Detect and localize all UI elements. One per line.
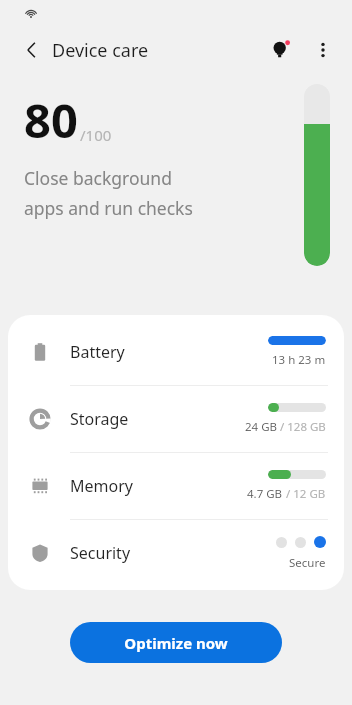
staticText: apps and run checks (24, 196, 193, 220)
staticText: Secure (289, 555, 326, 571)
staticText: Close background (24, 166, 172, 190)
staticText: 4.7 GB (247, 486, 283, 502)
button[interactable]: Storage (8, 386, 344, 452)
staticText: Device care (52, 38, 149, 63)
button[interactable]: Optimize now (70, 622, 282, 663)
staticText: 13 h 23 m (272, 352, 326, 368)
staticText: / 128 GB (277, 419, 326, 435)
staticText: Security (70, 542, 131, 564)
staticText: /100 (80, 125, 112, 145)
staticText: / 12 GB (283, 486, 326, 502)
staticText: Battery (70, 341, 125, 363)
staticText: Optimize now (124, 633, 228, 653)
staticText: 24 GB (245, 419, 277, 435)
staticText: Memory (70, 475, 133, 497)
button[interactable]: Tips (262, 31, 300, 69)
button[interactable]: Back (14, 32, 50, 68)
button[interactable]: Security (8, 520, 344, 586)
button[interactable]: Memory (8, 453, 344, 519)
button[interactable]: Battery (8, 319, 344, 385)
staticText: 80 (24, 88, 78, 152)
staticText: Storage (70, 408, 129, 430)
button[interactable]: More options (304, 31, 342, 69)
